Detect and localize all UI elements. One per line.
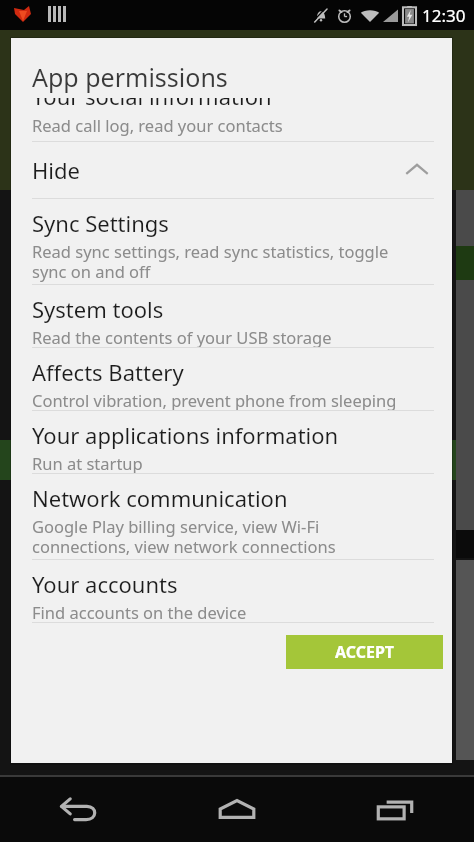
staticText: Sync Settings — [32, 208, 169, 238]
button[interactable]: Hide — [11, 142, 452, 198]
button[interactable]: Network communication — [11, 474, 452, 559]
staticText: Network communication — [32, 483, 288, 513]
button[interactable]: Back — [0, 777, 158, 842]
button[interactable]: ACCEPT — [286, 635, 443, 669]
button[interactable]: Home — [158, 777, 316, 842]
staticText: App permissions — [32, 60, 228, 94]
button[interactable]: Sync Settings — [11, 199, 452, 284]
button[interactable]: Affects Battery — [11, 348, 452, 410]
staticText: ACCEPT — [335, 641, 395, 663]
button[interactable]: Your applications information — [11, 411, 452, 473]
staticText: Affects Battery — [32, 357, 184, 387]
staticText: Read call log, read your contacts — [32, 114, 283, 136]
button[interactable]: Your social information — [11, 38, 452, 141]
button[interactable]: Recent apps — [316, 777, 474, 842]
staticText: Run at startup — [32, 452, 143, 473]
staticText: Read the contents of your USB storage — [32, 326, 332, 347]
staticText: Control vibration, prevent phone from sl… — [32, 389, 397, 410]
button[interactable]: Your accounts — [11, 560, 452, 622]
staticText: Your applications information — [32, 420, 339, 450]
other: Collapse — [404, 157, 430, 183]
staticText: Find accounts on the device — [32, 601, 247, 622]
staticText: System tools — [32, 294, 164, 324]
button[interactable]: System tools — [11, 285, 452, 347]
staticText: Google Play billing service, view Wi-Fi … — [32, 515, 336, 558]
staticText: Your social information — [32, 81, 272, 111]
staticText: Hide — [32, 155, 80, 185]
staticText: Your accounts — [32, 569, 178, 599]
staticText: Read sync settings, read sync statistics… — [32, 240, 389, 283]
staticText: 12:30 — [422, 4, 466, 27]
